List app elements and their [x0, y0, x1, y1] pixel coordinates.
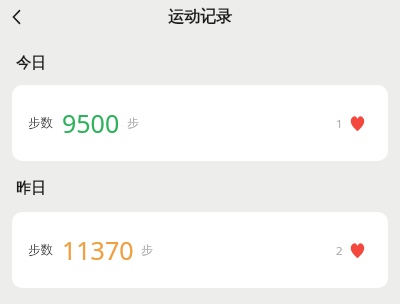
staticText: 1 [336, 116, 343, 132]
button[interactable]: Back [0, 0, 34, 34]
staticText: 11370 [62, 233, 134, 267]
staticText: 2 [336, 243, 343, 259]
staticText: 步 [141, 243, 153, 257]
staticText: 运动记录 [168, 7, 232, 27]
staticText: 昨日 [16, 179, 46, 198]
staticText: 步 [127, 116, 139, 130]
staticText: 步数 [28, 115, 53, 131]
staticText: 步数 [28, 242, 53, 258]
button[interactable]: 步数 [12, 212, 388, 288]
button[interactable]: Like [332, 238, 370, 263]
button[interactable]: Like [332, 111, 370, 136]
button[interactable]: 步数 [12, 85, 388, 161]
staticText: 今日 [16, 54, 46, 73]
staticText: 9500 [62, 106, 120, 140]
